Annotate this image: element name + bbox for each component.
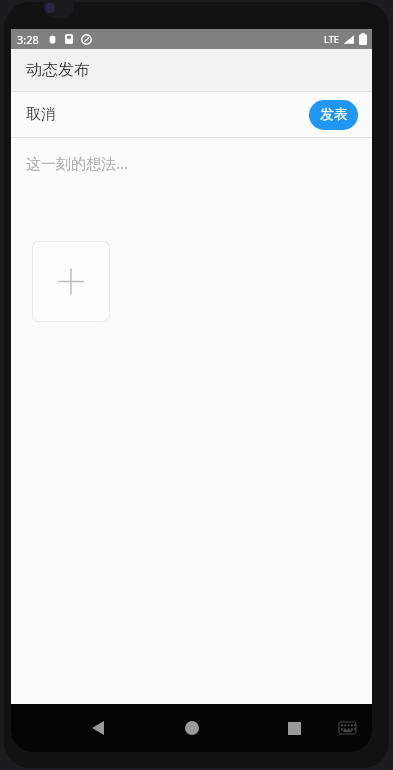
button[interactable]: 这一刻的想法...	[11, 151, 372, 179]
staticText: LTE	[324, 33, 339, 45]
button[interactable]: Add photo	[32, 241, 110, 322]
button[interactable]: Recent apps	[268, 704, 320, 752]
button[interactable]: 发表	[309, 100, 358, 130]
staticText: 发表	[320, 106, 348, 124]
staticText: 取消	[26, 105, 56, 124]
staticText: 3:28	[17, 32, 39, 47]
staticText: 动态发布	[26, 60, 90, 80]
button[interactable]: 取消	[11, 95, 74, 134]
button[interactable]: Back	[71, 704, 125, 752]
staticText: 这一刻的想法...	[26, 153, 129, 173]
button[interactable]: Switch keyboard	[327, 704, 367, 752]
button[interactable]: Home	[166, 704, 218, 752]
